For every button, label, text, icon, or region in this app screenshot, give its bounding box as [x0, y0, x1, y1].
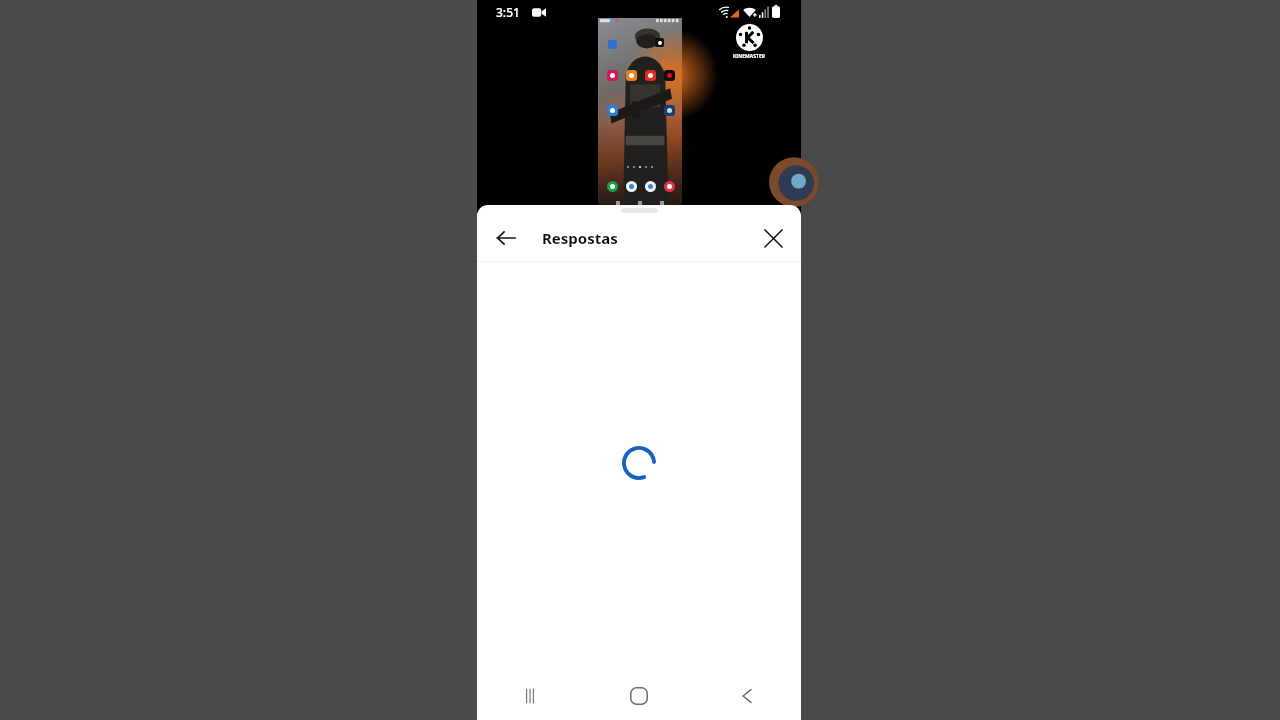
staticText: 3:51	[496, 4, 520, 20]
button[interactable]: Voltar	[486, 218, 526, 258]
button[interactable]: Voltar	[693, 672, 801, 720]
button[interactable]: Fechar	[753, 218, 793, 258]
staticText: KINEMASTER	[723, 53, 775, 60]
button[interactable]: Recentes	[477, 672, 585, 720]
button[interactable]: Início	[585, 672, 693, 720]
staticText: Respostas	[542, 228, 618, 248]
